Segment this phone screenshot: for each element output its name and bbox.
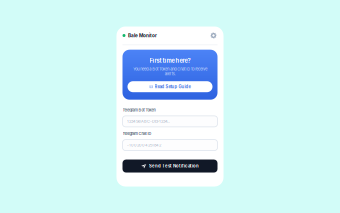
- staticText: Send Test Notification: [149, 163, 199, 169]
- staticText: Read Setup Guide: [154, 84, 190, 89]
- button[interactable]: Send Test Notification: [122, 160, 217, 173]
- staticText: -1002004251842: [127, 143, 161, 147]
- button[interactable]: 123456:ABC-DEF1234...: [122, 116, 217, 127]
- staticText: You need a Bot Token and Chat ID to rece…: [133, 67, 207, 76]
- staticText: Telegram Bot Token: [122, 108, 155, 112]
- staticText: Bale Monitor: [128, 33, 157, 38]
- staticText: First time here?: [149, 57, 190, 64]
- staticText: 123456:ABC-DEF1234...: [127, 119, 170, 124]
- button[interactable]: Read Setup Guide: [127, 81, 212, 92]
- staticText: Telegram Chat ID: [122, 131, 151, 136]
- button[interactable]: Settings: [209, 31, 217, 39]
- button[interactable]: -1002004251842: [122, 140, 217, 151]
